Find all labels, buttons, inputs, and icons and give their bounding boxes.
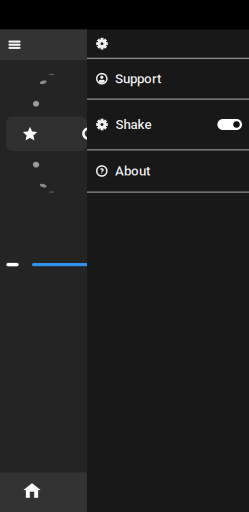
button[interactable]: Menu bbox=[0, 29, 29, 60]
button[interactable]: Home bbox=[16, 477, 47, 503]
button[interactable]: Favourites bbox=[6, 116, 87, 151]
staticText: About bbox=[115, 163, 150, 179]
button[interactable]: Settings bbox=[87, 29, 249, 59]
staticText: Support bbox=[115, 71, 161, 86]
button[interactable]: Support bbox=[87, 59, 249, 100]
button[interactable]: Shake bbox=[87, 100, 249, 150]
button[interactable]: About bbox=[87, 150, 249, 193]
staticText: Shake bbox=[115, 117, 151, 132]
button[interactable]: Collapse bbox=[1, 258, 23, 272]
